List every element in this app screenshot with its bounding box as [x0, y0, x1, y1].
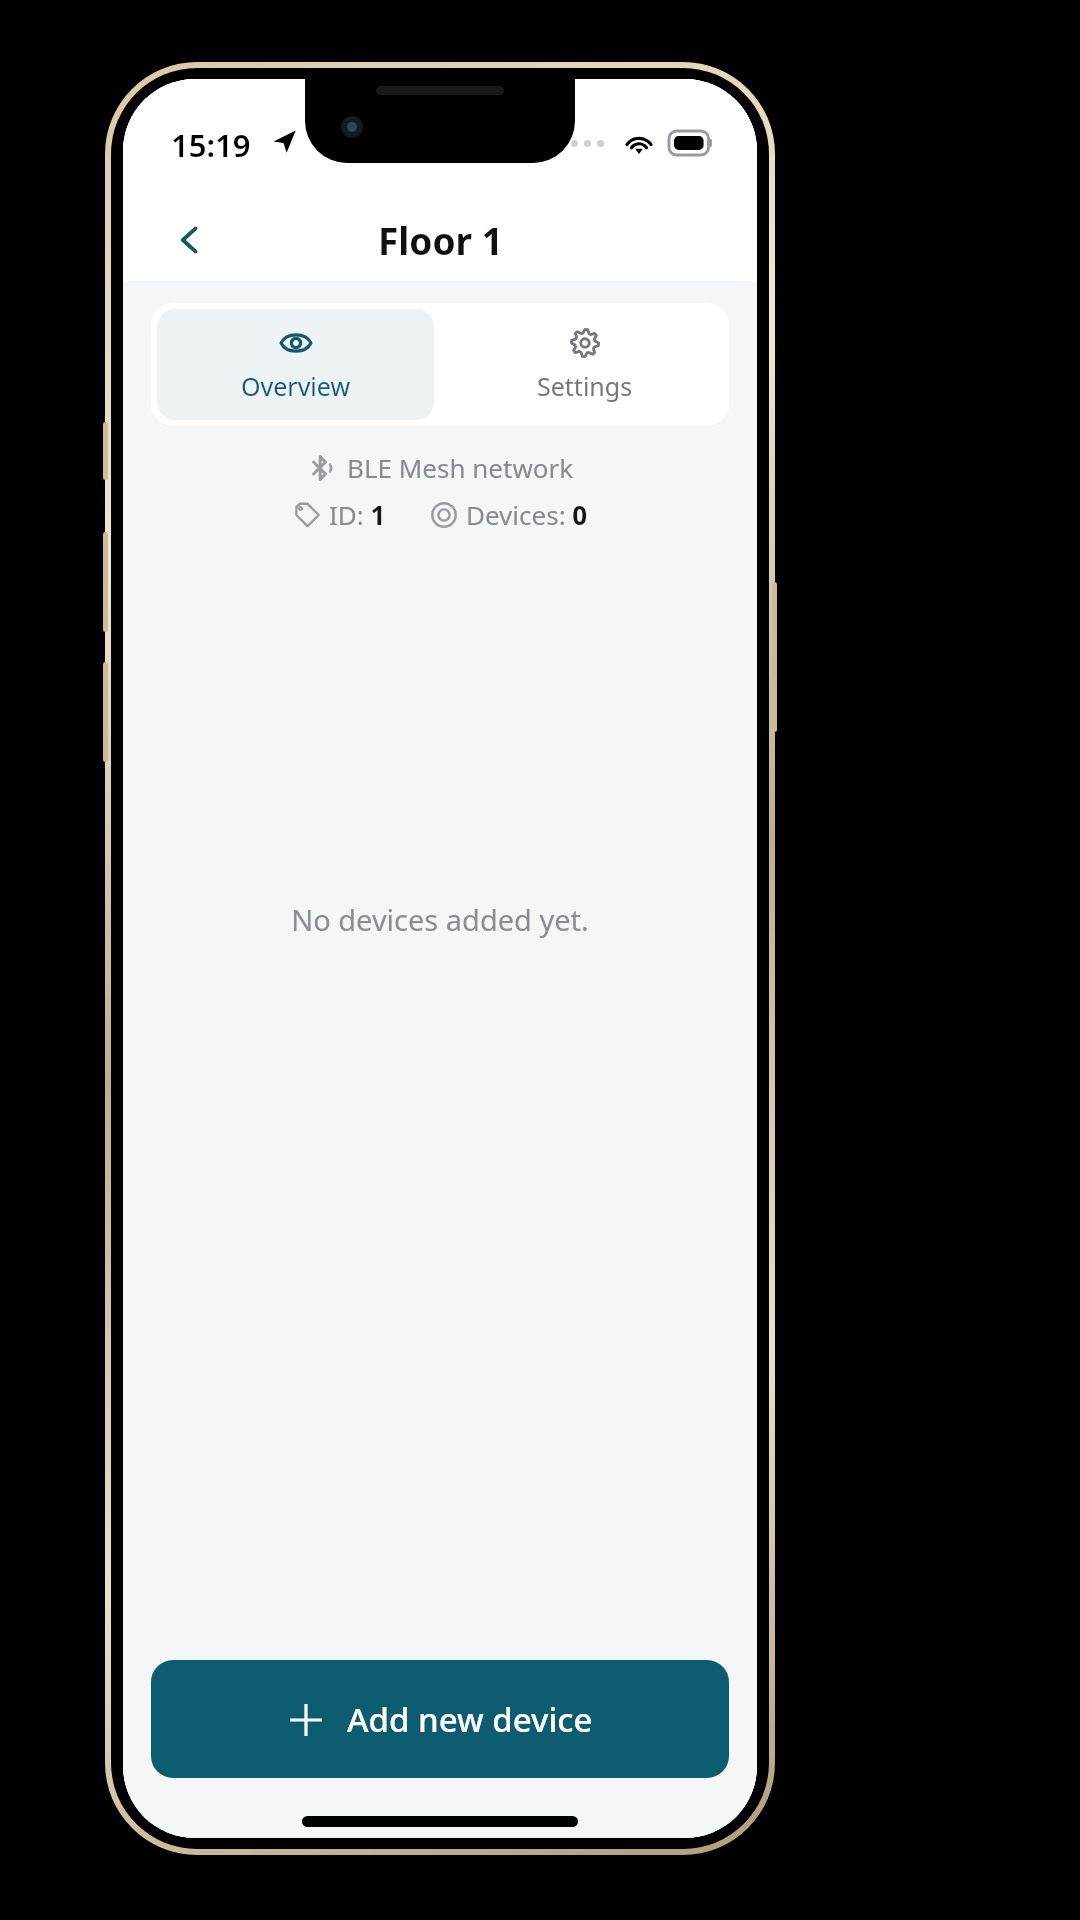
staticText: Devices: 0: [466, 497, 588, 532]
staticText: No devices added yet.: [291, 900, 589, 939]
staticText: Overview: [241, 369, 351, 403]
button[interactable]: Add new device: [151, 1660, 729, 1778]
button[interactable]: Overview: [157, 309, 434, 420]
staticText: BLE Mesh network: [347, 450, 574, 485]
staticText: 15:19: [171, 124, 251, 166]
staticText: Floor 1: [378, 215, 503, 265]
staticText: Settings: [537, 369, 633, 403]
button[interactable]: Back: [159, 209, 221, 271]
staticText: Add new device: [347, 1697, 593, 1742]
staticText: ID: 1: [329, 497, 386, 532]
button[interactable]: Settings: [440, 303, 729, 426]
